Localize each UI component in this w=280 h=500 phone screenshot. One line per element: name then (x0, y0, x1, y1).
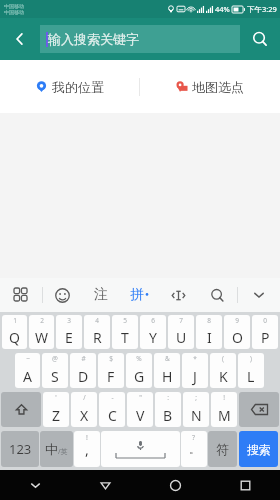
staticText: E (65, 328, 73, 347)
staticText: G (134, 367, 145, 386)
staticText: $ (109, 354, 113, 363)
staticText: 4 (95, 316, 99, 325)
staticText: " (139, 393, 142, 402)
staticText: 。 (189, 442, 200, 456)
staticText: S (51, 367, 59, 386)
button[interactable]: @ (42, 353, 68, 388)
staticText: ~ (26, 354, 30, 363)
button[interactable]: Back (70, 470, 140, 500)
button[interactable]: Home (140, 470, 210, 500)
staticText: 3 (67, 316, 71, 325)
button[interactable]: & (154, 353, 180, 388)
staticText: 中国移动 (4, 3, 24, 9)
button[interactable]: 输入搜索关键字 (40, 25, 240, 53)
staticText: 8 (207, 316, 211, 325)
staticText: V (136, 406, 145, 425)
staticText: T (121, 328, 129, 347)
staticText: M (218, 406, 231, 425)
button[interactable]: Period (181, 431, 207, 467)
button[interactable]: 1 (2, 315, 27, 349)
staticText: & (165, 354, 170, 363)
button[interactable]: Search (240, 18, 280, 60)
button[interactable]: Backspace (239, 392, 279, 427)
button[interactable]: / (71, 392, 97, 427)
button[interactable]: 3 (56, 315, 82, 349)
button[interactable]: - (99, 392, 125, 427)
staticText: 拼 (130, 286, 144, 304)
staticText: H (162, 367, 173, 386)
staticText: Q (9, 328, 20, 347)
button[interactable]: ! (211, 392, 237, 427)
staticText: A (23, 367, 32, 386)
staticText: K (219, 367, 228, 386)
button[interactable]: ~ (15, 353, 40, 388)
staticText: , (85, 440, 89, 459)
button[interactable]: Back (0, 18, 40, 60)
button[interactable]: Chinese English toggle (40, 431, 73, 467)
button[interactable]: Symbols (208, 431, 237, 467)
button[interactable]: ( (210, 353, 236, 388)
button[interactable]: # (70, 353, 96, 388)
staticText: * (193, 354, 197, 363)
button[interactable]: 4 (84, 315, 110, 349)
staticText: 符 (216, 441, 229, 457)
button[interactable]: Hide keyboard (238, 278, 280, 312)
button[interactable]: Numbers (1, 431, 39, 467)
button[interactable]: " (127, 392, 153, 427)
button[interactable]: ) (238, 353, 264, 388)
staticText: % (136, 354, 142, 363)
staticText: 7 (179, 316, 183, 325)
staticText: D (78, 367, 89, 386)
staticText: - (111, 393, 114, 402)
staticText: W (35, 328, 49, 347)
staticText: / (83, 393, 86, 402)
button[interactable]: 0 (252, 315, 278, 349)
staticText: O (232, 328, 243, 347)
staticText: R (93, 328, 102, 347)
button[interactable]: 8 (196, 315, 222, 349)
button[interactable]: 6 (140, 315, 166, 349)
button[interactable]: ' (43, 392, 69, 427)
button[interactable]: 2 (29, 315, 54, 349)
staticText: X (80, 406, 89, 425)
button[interactable]: 地图选点 (140, 60, 280, 113)
staticText: 123 (9, 440, 32, 458)
button[interactable]: 拼 (120, 278, 159, 312)
button[interactable]: Keyboard layouts (0, 278, 42, 312)
button[interactable]: Search (198, 278, 237, 312)
button[interactable]: ; (183, 392, 209, 427)
staticText: U (176, 328, 187, 347)
button[interactable]: Zhuyin input (81, 278, 120, 312)
staticText: 1 (13, 316, 17, 325)
button[interactable]: 7 (168, 315, 194, 349)
staticText: 地图选点 (192, 79, 244, 95)
staticText: L (247, 367, 255, 386)
staticText: 5 (123, 316, 127, 325)
staticText: 输入搜索关键字 (48, 31, 139, 47)
button[interactable]: * (182, 353, 208, 388)
button[interactable]: 5 (112, 315, 138, 349)
button[interactable]: : (155, 392, 181, 427)
staticText: C (108, 406, 117, 425)
staticText: ! (223, 393, 225, 402)
staticText: 6 (151, 316, 155, 325)
button[interactable]: 我的位置 (0, 60, 139, 113)
button[interactable]: 9 (224, 315, 250, 349)
button[interactable]: % (126, 353, 152, 388)
button[interactable]: Emoji (43, 278, 81, 312)
button[interactable]: Move cursor (159, 278, 198, 312)
button[interactable]: Recents (210, 470, 280, 500)
button[interactable]: Hide keyboard (0, 470, 70, 500)
staticText: F (107, 367, 115, 386)
button[interactable]: $ (98, 353, 124, 388)
staticText: /英 (58, 447, 68, 457)
staticText: ' (55, 393, 57, 402)
staticText: I (207, 328, 212, 347)
button[interactable]: 搜索 (239, 431, 278, 467)
button[interactable]: Space (101, 431, 180, 467)
button[interactable]: Comma (74, 431, 100, 467)
staticText: ( (222, 354, 224, 363)
staticText: 搜索 (247, 442, 271, 457)
button[interactable]: Shift (1, 392, 41, 427)
staticText: Y (149, 328, 157, 347)
